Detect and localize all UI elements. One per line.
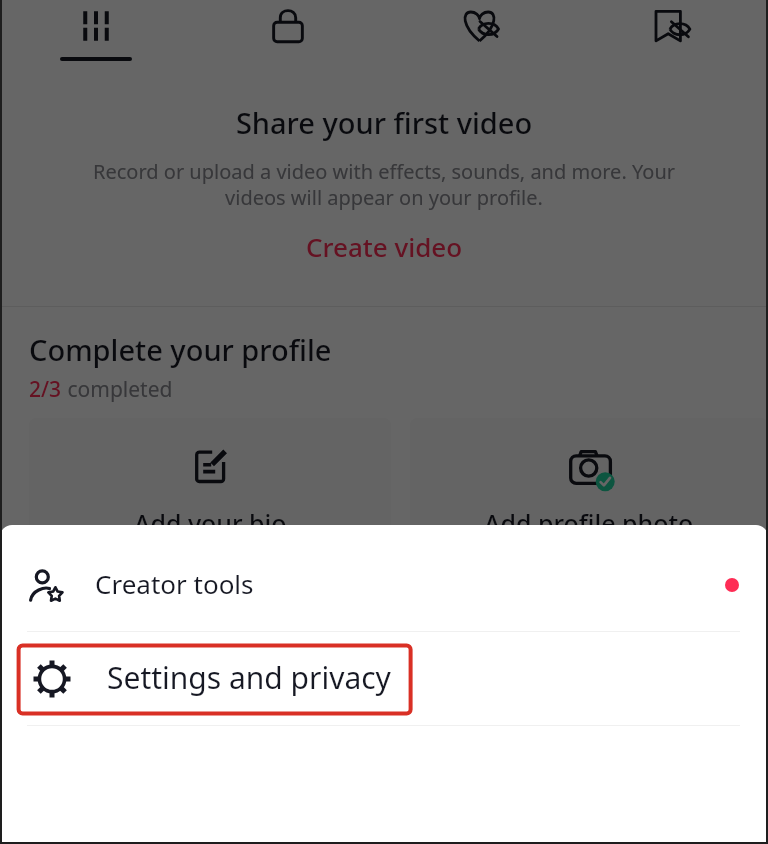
staticText: Add profile photo — [484, 506, 694, 540]
staticText: Add your bio — [134, 506, 287, 540]
staticText: Settings and privacy — [107, 657, 391, 698]
button[interactable]: Add profile photo — [410, 418, 768, 598]
staticText: Create video — [306, 229, 463, 264]
button[interactable]: Creator tools — [0, 525, 768, 631]
button[interactable]: Add your bio — [29, 418, 391, 598]
button[interactable]: Private videos — [192, 0, 384, 52]
staticText: Record or upload a video with effects, s… — [78, 158, 690, 211]
staticText: Creator tools — [95, 566, 254, 601]
button[interactable]: Videos — [0, 0, 192, 52]
button[interactable]: Create video — [306, 229, 463, 264]
staticText: completed — [62, 375, 173, 404]
staticText: Complete your profile — [29, 330, 332, 369]
staticText: Share your first video — [0, 103, 768, 142]
button[interactable]: Settings and privacy — [0, 632, 768, 725]
button[interactable]: Liked videos — [384, 0, 576, 52]
button[interactable]: Favourites — [576, 0, 768, 52]
staticText: 2/3 — [29, 375, 62, 404]
